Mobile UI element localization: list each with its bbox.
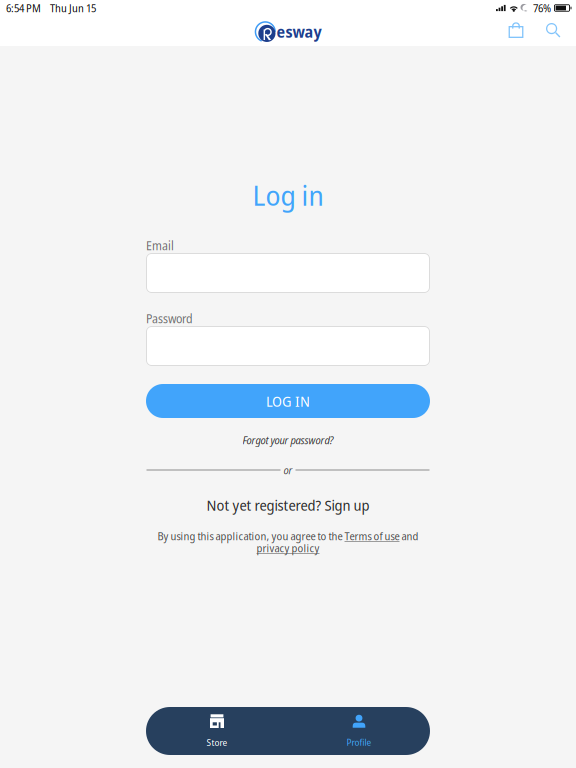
staticText: Thu Jun 15 [50, 1, 96, 15]
staticText: esway [276, 21, 321, 42]
staticText: privacy policy [256, 541, 319, 555]
staticText: LOG IN [266, 391, 310, 411]
staticText: Forgot your password? [242, 433, 333, 447]
staticText: Store [206, 736, 227, 749]
staticText: Password [146, 310, 193, 327]
button[interactable]: Forgot your password? [146, 433, 430, 447]
button[interactable]: Not yet registered? Sign up [146, 497, 430, 513]
staticText: Log in [252, 176, 323, 214]
button[interactable]: Store [146, 707, 288, 755]
button[interactable]: Shopping bag [498, 19, 534, 45]
button[interactable]: Search [534, 19, 572, 45]
staticText: 6:54 PM [6, 1, 41, 15]
staticText: Email [146, 237, 174, 254]
staticText: or [283, 463, 292, 477]
staticText: Profile [346, 736, 371, 748]
staticText: 76% [533, 1, 551, 15]
staticText: By using this application, you agree to … [157, 529, 418, 543]
button[interactable]: Profile [288, 707, 430, 755]
staticText: Not yet registered? Sign up [206, 495, 369, 515]
button[interactable]: LOG IN [146, 384, 430, 418]
